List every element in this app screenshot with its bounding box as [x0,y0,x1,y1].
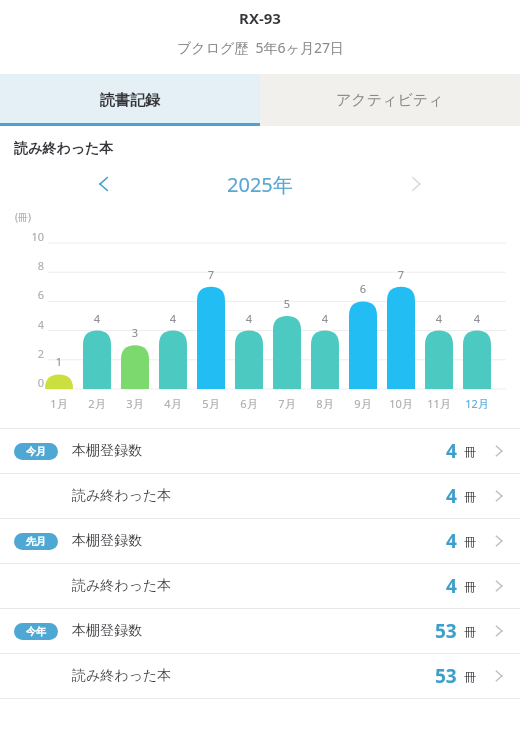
staticText: ブクログ歴 5年6ヶ月27日 [177,38,344,57]
staticText: 4 [424,311,454,326]
staticText: 4 [462,311,492,326]
staticText: 4 [0,317,44,332]
staticText: 8 [0,258,44,273]
staticText: 0 [0,375,44,390]
button[interactable]: アクティビティ [260,74,520,126]
staticText: 先月 [26,535,46,548]
staticText: 冊 [464,444,476,459]
staticText: 2 [0,346,44,361]
staticText: 1 [44,354,74,369]
staticText: 読書記録 [100,91,160,110]
staticText: 冊 [464,624,476,639]
button[interactable]: 2025年 [227,171,293,198]
staticText: 冊 [464,534,476,549]
staticText: 53 [435,663,457,689]
staticText: 4 [82,311,112,326]
button[interactable]: 読書記録 [0,74,260,126]
staticText: 4 [446,573,457,599]
staticText: 読み終わった本 [72,577,446,595]
staticText: 1月 [41,396,77,411]
staticText: 8月 [307,396,343,411]
staticText: RX-93 [239,8,281,28]
staticText: 7 [386,267,416,282]
staticText: 11月 [421,396,457,411]
staticText: 冊 [464,669,476,684]
button[interactable]: Next year [398,166,434,202]
staticText: 5月 [193,396,229,411]
staticText: 7月 [269,396,305,411]
button[interactable]: 読み終わった本 [0,474,520,518]
staticText: 本棚登録数 [72,442,446,460]
staticText: 本棚登録数 [72,532,446,550]
staticText: 4 [310,311,340,326]
staticText: 今月 [26,445,46,458]
staticText: 4月 [155,396,191,411]
staticText: 10月 [383,396,419,411]
staticText: 冊 [464,489,476,504]
staticText: 6月 [231,396,267,411]
staticText: 2025年 [227,171,293,198]
staticText: 本棚登録数 [72,622,435,640]
staticText: 3月 [117,396,153,411]
staticText: 読み終わった本 [14,140,114,158]
button[interactable]: 読み終わった本 [0,564,520,608]
staticText: 6 [0,287,44,302]
staticText: 4 [446,438,457,464]
staticText: 4 [158,311,188,326]
staticText: 冊 [464,579,476,594]
staticText: 5 [272,296,302,311]
staticText: 今年 [26,625,46,638]
staticText: 読み終わった本 [72,487,446,505]
staticText: 2月 [79,396,115,411]
staticText: 53 [435,618,457,644]
staticText: 4 [446,528,457,554]
staticText: 4 [234,311,264,326]
staticText: 12月 [459,396,495,411]
staticText: 10 [0,229,44,244]
staticText: 7 [196,267,226,282]
button[interactable]: 読み終わった本 [0,654,520,698]
button[interactable]: Previous year [86,166,122,202]
button[interactable]: 今月 [0,429,520,473]
staticText: (冊) [15,210,31,224]
button[interactable]: 先月 [0,519,520,563]
staticText: 読み終わった本 [72,667,435,685]
button[interactable]: 今年 [0,609,520,653]
staticText: 9月 [345,396,381,411]
staticText: 6 [348,281,378,296]
staticText: 4 [446,483,457,509]
staticText: 3 [120,325,150,340]
staticText: アクティビティ [336,91,444,110]
